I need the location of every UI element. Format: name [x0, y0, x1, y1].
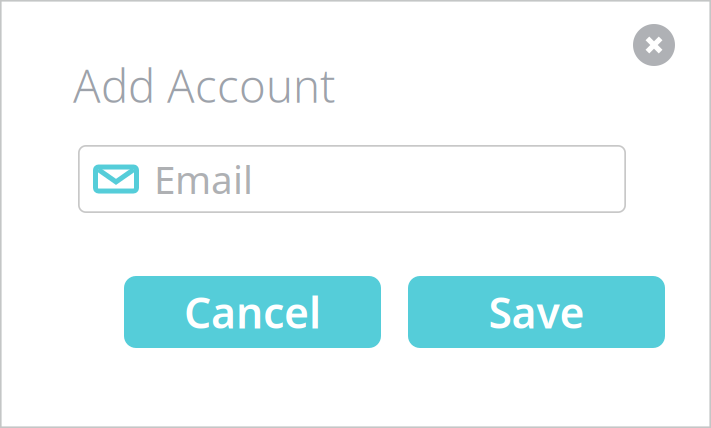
staticText: Save	[488, 284, 584, 340]
button[interactable]: Email	[78, 145, 626, 213]
button[interactable]: Close	[633, 24, 675, 66]
staticText: Cancel	[184, 284, 321, 340]
staticText: Add Account	[73, 55, 335, 115]
button[interactable]: Save	[408, 276, 665, 348]
staticText: Email	[154, 153, 253, 205]
button[interactable]: Cancel	[124, 276, 381, 348]
